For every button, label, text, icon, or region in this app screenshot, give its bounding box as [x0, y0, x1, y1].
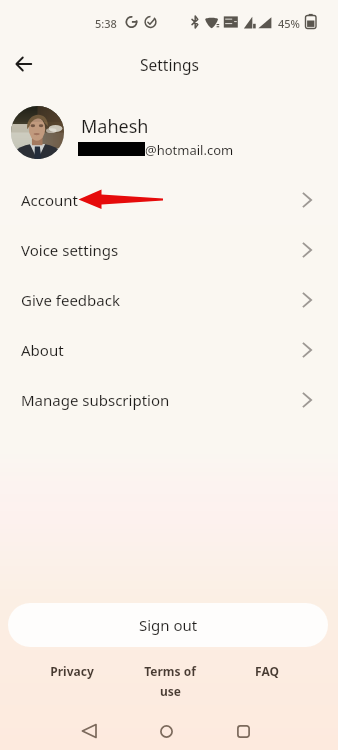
- button[interactable]: FAQ: [218, 663, 315, 679]
- staticText: FAQ: [255, 663, 279, 679]
- button[interactable]: About: [0, 325, 338, 375]
- button[interactable]: Profile photo: [11, 106, 64, 159]
- staticText: Sign out: [139, 615, 198, 635]
- button[interactable]: Back: [6, 46, 42, 82]
- button[interactable]: Privacy: [23, 663, 121, 679]
- button[interactable]: Manage subscription: [0, 375, 338, 425]
- button[interactable]: Recents: [223, 711, 263, 750]
- staticText: Voice settings: [21, 240, 119, 260]
- staticText: use: [160, 683, 181, 698]
- staticText: Terms of: [144, 663, 196, 679]
- button[interactable]: Voice settings: [0, 225, 338, 275]
- staticText: Manage subscription: [21, 390, 170, 410]
- staticText: Mahesh: [81, 114, 149, 139]
- button[interactable]: Terms of: [121, 663, 218, 698]
- button[interactable]: Sign out: [8, 603, 328, 647]
- staticText: Account: [21, 190, 79, 210]
- staticText: 45%: [278, 16, 300, 31]
- staticText: @hotmail.com: [145, 141, 234, 159]
- staticText: Give feedback: [21, 290, 120, 310]
- button[interactable]: Back: [69, 711, 109, 750]
- staticText: 5:38: [95, 16, 117, 31]
- button[interactable]: Home: [146, 711, 186, 750]
- staticText: Settings: [140, 54, 199, 75]
- staticText: About: [21, 340, 64, 360]
- button[interactable]: Give feedback: [0, 275, 338, 325]
- staticText: Privacy: [50, 663, 94, 679]
- button[interactable]: Account: [0, 175, 338, 225]
